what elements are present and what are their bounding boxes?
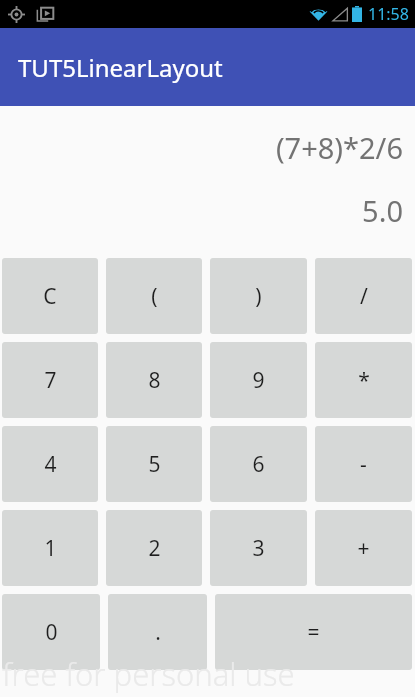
button[interactable]: 5 [106, 426, 202, 502]
button[interactable]: = [215, 594, 412, 670]
staticText: 5.0 [362, 191, 403, 230]
button[interactable]: 2 [106, 510, 202, 586]
button[interactable]: 1 [2, 510, 98, 586]
staticText: 7 [44, 366, 57, 395]
button[interactable]: ) [210, 258, 307, 334]
staticText: (7+8)*2/6 [275, 128, 403, 167]
staticText: 2 [148, 534, 161, 563]
staticText: 8 [148, 366, 161, 395]
staticText: TUT5LinearLayout [18, 51, 223, 84]
staticText: - [360, 450, 367, 479]
button[interactable]: C [2, 258, 98, 334]
staticText: + [357, 534, 370, 563]
staticText: 0 [45, 618, 58, 647]
button[interactable]: * [315, 342, 412, 418]
button[interactable]: 4 [2, 426, 98, 502]
staticText: C [43, 282, 57, 311]
button[interactable]: + [315, 510, 412, 586]
button[interactable]: / [315, 258, 412, 334]
button[interactable]: ( [106, 258, 202, 334]
button[interactable]: 9 [210, 342, 307, 418]
staticText: ) [255, 282, 262, 311]
staticText: . [155, 618, 161, 647]
staticText: ( [151, 282, 158, 311]
button[interactable]: 6 [210, 426, 307, 502]
button[interactable]: 7 [2, 342, 98, 418]
staticText: = [307, 618, 320, 647]
staticText: 3 [252, 534, 265, 563]
staticText: free for personal use [2, 653, 295, 695]
staticText: 1 [44, 534, 57, 563]
staticText: * [358, 366, 370, 395]
button[interactable]: 8 [106, 342, 202, 418]
button[interactable]: - [315, 426, 412, 502]
staticText: 6 [252, 450, 265, 479]
button[interactable]: 3 [210, 510, 307, 586]
staticText: 11:58 [368, 3, 409, 25]
button[interactable]: 0 [2, 594, 100, 670]
staticText: 4 [44, 450, 57, 479]
staticText: / [360, 282, 368, 311]
staticText: 5 [148, 450, 161, 479]
staticText: 9 [252, 366, 265, 395]
button[interactable]: . [108, 594, 207, 670]
